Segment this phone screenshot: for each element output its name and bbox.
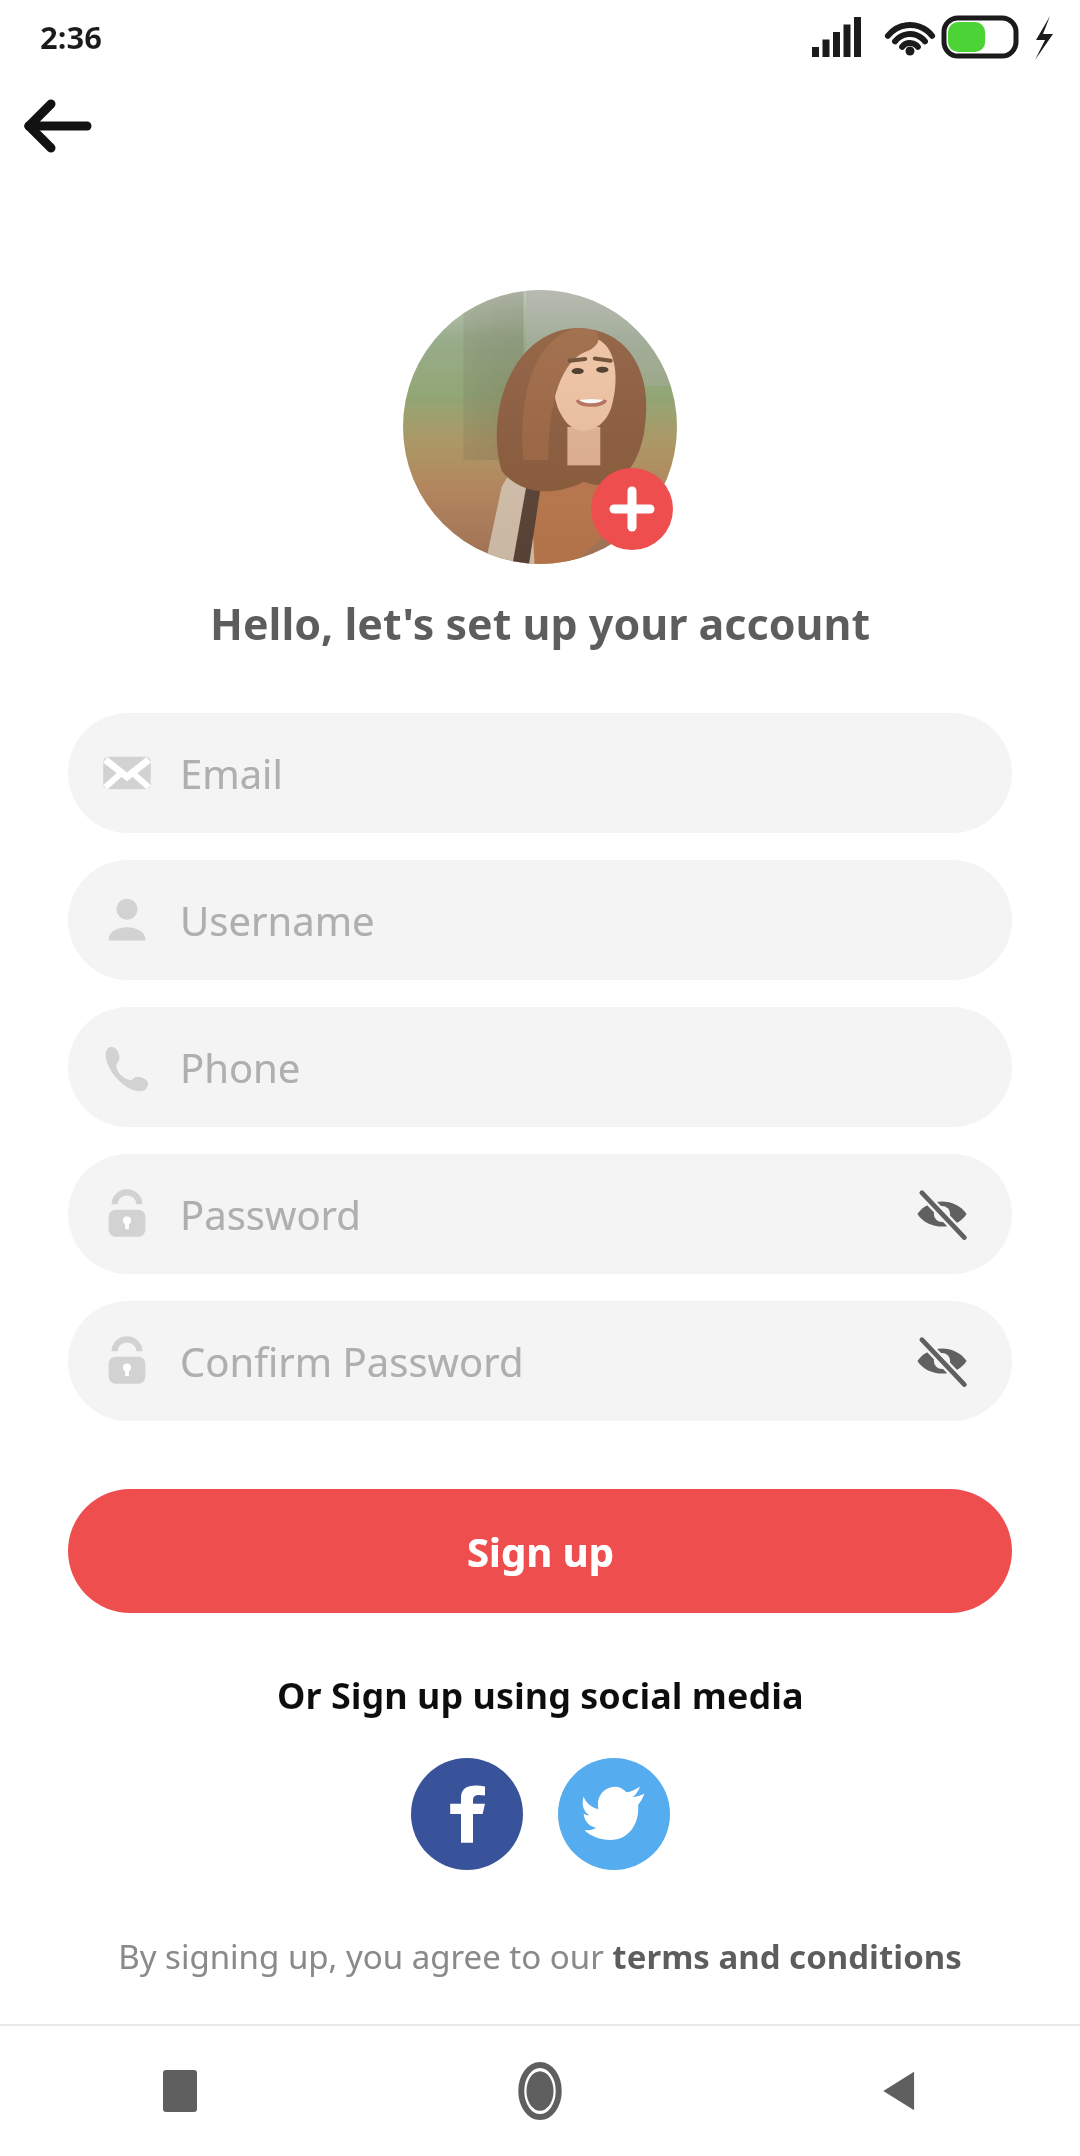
button[interactable]: Phone [68,1007,1012,1127]
button[interactable]: Sign up [68,1489,1012,1613]
staticText: 2:36 [40,16,102,58]
button[interactable]: Show password [906,1325,978,1397]
button[interactable]: Email [68,713,1012,833]
button[interactable]: By signing up, you agree to our terms an… [98,1928,982,1985]
button[interactable]: Recent apps [0,2026,360,2156]
staticText: Username [180,893,978,947]
staticText: Hello, let's set up your account [210,594,871,653]
staticText: Email [180,746,978,800]
staticText: Password [180,1187,906,1241]
staticText: Confirm Password [180,1334,906,1388]
staticText: By signing up, you agree to our terms an… [118,1934,962,1979]
staticText: Or Sign up using social media [277,1671,804,1720]
button[interactable]: Confirm Password [68,1301,1012,1421]
staticText: Sign up [467,1524,614,1578]
button[interactable]: Profile photo [403,290,677,564]
button[interactable]: Add photo [591,468,673,550]
button[interactable]: Username [68,860,1012,980]
button[interactable]: Sign up with Twitter [558,1758,670,1870]
button[interactable]: Home [360,2026,720,2156]
staticText: Phone [180,1040,978,1094]
button[interactable]: Sign up with Facebook [411,1758,523,1870]
button[interactable]: Back [10,78,106,174]
button[interactable]: Show password [906,1178,978,1250]
button[interactable]: Password [68,1154,1012,1274]
button[interactable]: Back [720,2026,1080,2156]
